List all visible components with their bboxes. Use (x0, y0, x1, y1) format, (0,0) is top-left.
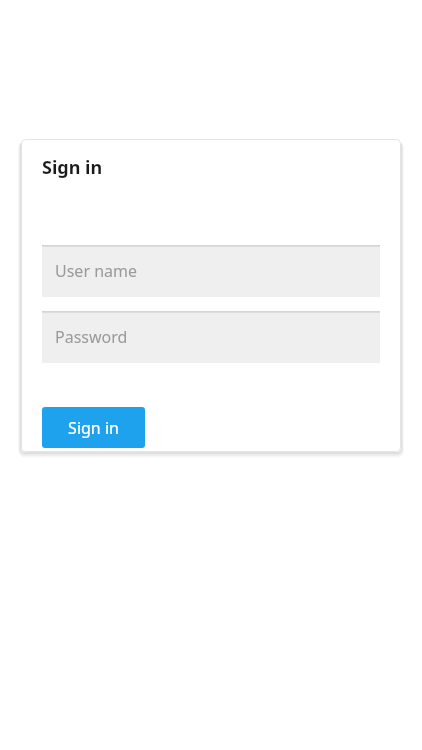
staticText: User name (55, 260, 138, 282)
button[interactable]: Password (42, 311, 380, 363)
button[interactable]: User name (42, 245, 380, 297)
staticText: Sign in (68, 417, 119, 439)
staticText: Sign in (42, 155, 103, 180)
staticText: Password (55, 326, 128, 348)
button[interactable]: Sign in (42, 407, 145, 448)
